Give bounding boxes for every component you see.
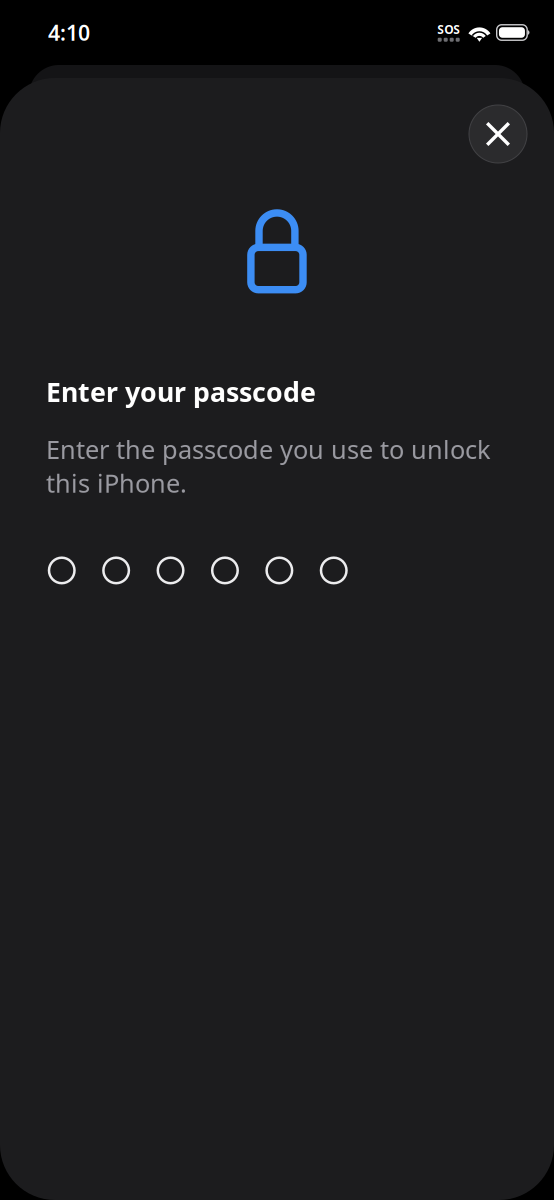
staticText: 4:10 <box>48 18 90 47</box>
staticText: SOS <box>437 21 460 37</box>
staticText: Enter the passcode you use to unlock thi… <box>46 432 491 500</box>
button[interactable]: Close <box>469 105 527 163</box>
staticText: Enter your passcode <box>46 374 316 409</box>
button[interactable]: Passcode <box>49 558 508 583</box>
